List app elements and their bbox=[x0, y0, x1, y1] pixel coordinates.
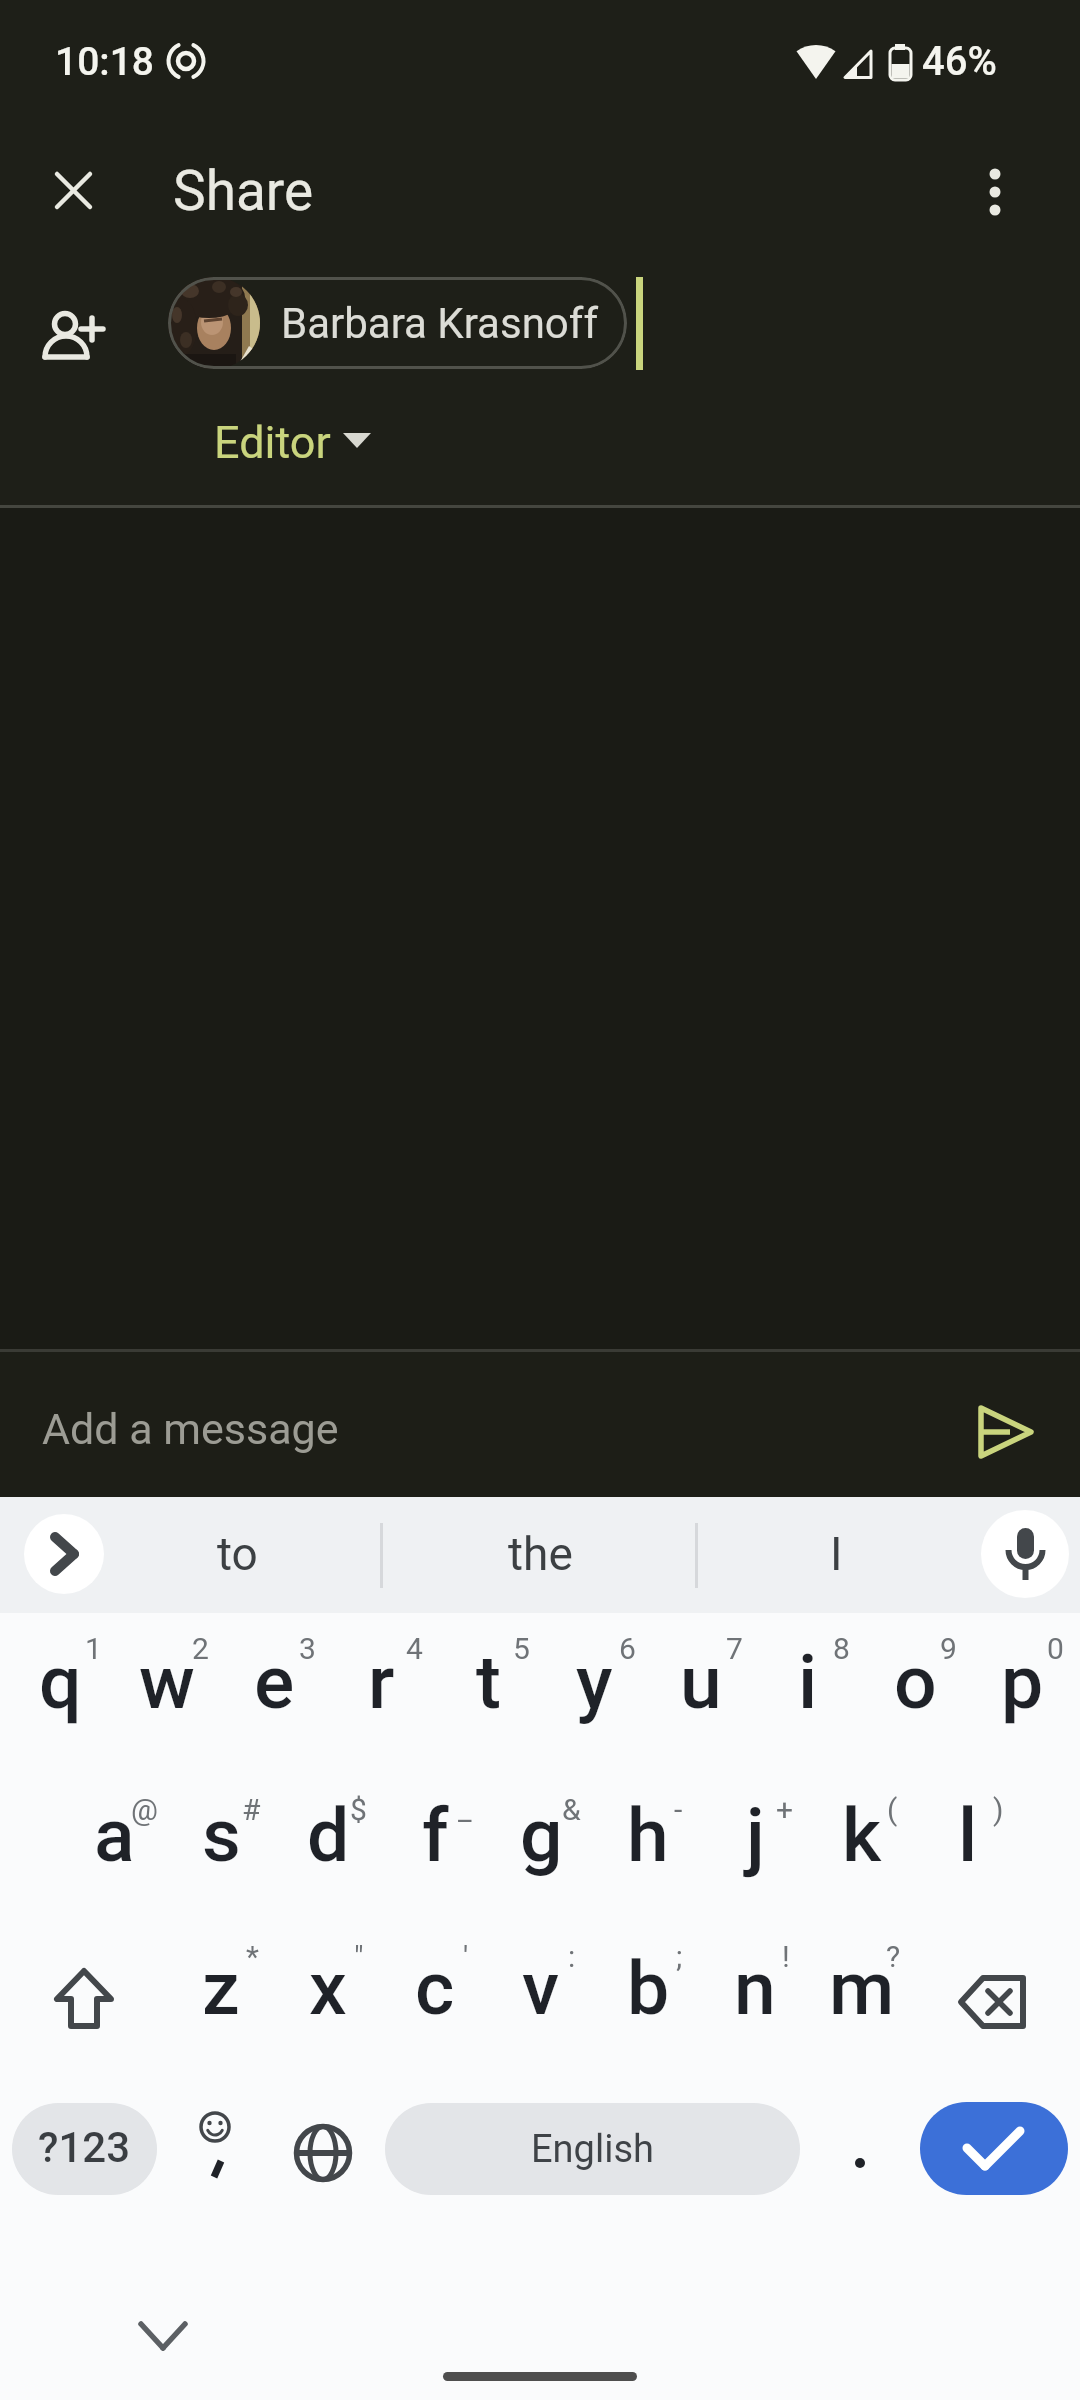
button[interactable]: f bbox=[382, 1766, 488, 1919]
staticText: 2 bbox=[192, 1631, 209, 1666]
staticText: 3 bbox=[299, 1631, 316, 1666]
button[interactable]: b bbox=[595, 1919, 701, 2072]
staticText: k bbox=[842, 1791, 882, 1879]
button[interactable] bbox=[196, 410, 386, 480]
staticText: h bbox=[627, 1791, 669, 1879]
staticText: I bbox=[830, 1527, 843, 1581]
button[interactable]: e bbox=[221, 1613, 327, 1766]
staticText: r bbox=[368, 1638, 395, 1726]
staticText: g bbox=[520, 1791, 563, 1879]
staticText: c bbox=[415, 1944, 455, 2032]
staticText: ( bbox=[887, 1792, 898, 1827]
button[interactable]: r bbox=[328, 1613, 434, 1766]
staticText: $ bbox=[350, 1792, 367, 1827]
staticText: ) bbox=[993, 1792, 1004, 1827]
button[interactable] bbox=[470, 1510, 610, 1600]
button[interactable] bbox=[168, 277, 627, 369]
staticText: to bbox=[217, 1527, 258, 1581]
button[interactable] bbox=[270, 2072, 376, 2225]
staticText: ! bbox=[782, 1939, 790, 1974]
button[interactable]: i bbox=[755, 1613, 861, 1766]
button[interactable]: q bbox=[7, 1613, 113, 1766]
button[interactable]: k bbox=[809, 1766, 915, 1919]
button[interactable]: h bbox=[595, 1766, 701, 1919]
staticText: ; bbox=[676, 1939, 683, 1974]
staticText: m bbox=[829, 1944, 895, 2032]
button[interactable]: s bbox=[168, 1766, 274, 1919]
staticText: English bbox=[531, 2127, 654, 2172]
button[interactable]: t bbox=[435, 1613, 541, 1766]
staticText: Barbara Krasnoff bbox=[281, 299, 598, 348]
staticText: p bbox=[1001, 1638, 1044, 1726]
button[interactable]: ?123 bbox=[12, 2103, 157, 2195]
staticText: - bbox=[674, 1792, 683, 1827]
staticText: ?123 bbox=[38, 2123, 131, 2172]
staticText: q bbox=[39, 1638, 82, 1726]
staticText: 46% bbox=[922, 38, 997, 85]
button[interactable]: o bbox=[862, 1613, 968, 1766]
button[interactable]: w bbox=[114, 1613, 220, 1766]
staticText: i bbox=[798, 1638, 818, 1726]
button[interactable] bbox=[20, 280, 130, 390]
staticText: o bbox=[894, 1638, 937, 1726]
staticText: y bbox=[576, 1638, 613, 1726]
button[interactable]: z bbox=[168, 1919, 274, 2072]
staticText: 10:18 bbox=[55, 39, 155, 85]
staticText: * bbox=[246, 1939, 259, 1974]
button[interactable]: c bbox=[382, 1919, 488, 2072]
button[interactable] bbox=[120, 2300, 206, 2370]
button[interactable]: u bbox=[648, 1613, 754, 1766]
button[interactable] bbox=[947, 146, 1043, 242]
staticText: + bbox=[776, 1792, 794, 1827]
button[interactable] bbox=[31, 1919, 137, 2072]
button[interactable]: p bbox=[969, 1613, 1075, 1766]
staticText: 8 bbox=[833, 1631, 850, 1666]
staticText: 7 bbox=[726, 1631, 743, 1666]
staticText: : bbox=[568, 1939, 576, 1974]
staticText: t bbox=[476, 1638, 501, 1726]
button[interactable]: j bbox=[702, 1766, 808, 1919]
staticText: 5 bbox=[513, 1631, 530, 1666]
staticText: 4 bbox=[406, 1631, 423, 1666]
staticText: w bbox=[139, 1638, 195, 1726]
button[interactable]: v bbox=[488, 1919, 594, 2072]
staticText: s bbox=[202, 1791, 241, 1879]
staticText: 6 bbox=[619, 1631, 636, 1666]
staticText: _ bbox=[458, 1792, 472, 1827]
staticText: z bbox=[202, 1944, 240, 2032]
button[interactable] bbox=[28, 146, 124, 242]
staticText: b bbox=[627, 1944, 670, 2032]
button[interactable] bbox=[0, 1352, 940, 1497]
button[interactable] bbox=[24, 1514, 104, 1594]
button[interactable] bbox=[170, 1510, 310, 1600]
staticText: e bbox=[254, 1638, 295, 1726]
button[interactable]: d bbox=[275, 1766, 381, 1919]
button[interactable] bbox=[766, 1510, 906, 1600]
button[interactable]: English bbox=[385, 2103, 800, 2195]
button[interactable]: y bbox=[541, 1613, 647, 1766]
staticText: v bbox=[522, 1944, 560, 2032]
button[interactable]: a bbox=[61, 1766, 167, 1919]
staticText: Add a message bbox=[42, 1404, 339, 1454]
staticText: ' bbox=[463, 1939, 469, 1974]
staticText: x bbox=[309, 1944, 347, 2032]
staticText: Editor bbox=[214, 416, 331, 469]
button[interactable] bbox=[920, 2102, 1068, 2195]
button[interactable]: m bbox=[809, 1919, 915, 2072]
staticText: # bbox=[242, 1792, 261, 1827]
button[interactable]: l bbox=[915, 1766, 1021, 1919]
button[interactable]: g bbox=[488, 1766, 594, 1919]
button[interactable] bbox=[940, 1919, 1046, 2072]
staticText: l bbox=[958, 1791, 978, 1879]
button[interactable]: x bbox=[275, 1919, 381, 2072]
button[interactable] bbox=[807, 2072, 913, 2225]
staticText: Share bbox=[173, 159, 314, 223]
button[interactable] bbox=[986, 1514, 1066, 1594]
button[interactable] bbox=[165, 2072, 271, 2225]
staticText: 1 bbox=[85, 1631, 102, 1666]
staticText: a bbox=[94, 1791, 135, 1879]
button[interactable] bbox=[950, 1380, 1060, 1490]
staticText: 0 bbox=[1047, 1631, 1064, 1666]
button[interactable]: n bbox=[702, 1919, 808, 2072]
staticText: j bbox=[746, 1791, 765, 1879]
